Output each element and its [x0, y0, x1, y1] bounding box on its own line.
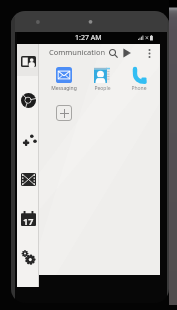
staticText: 1:27 AM [75, 33, 102, 43]
button[interactable]: Messaging [47, 67, 81, 92]
button[interactable]: Communication [17, 45, 39, 77]
button[interactable]: Play [120, 46, 134, 60]
button[interactable]: Calendar [17, 202, 39, 234]
button[interactable]: Games [17, 124, 39, 156]
staticText: Messaging [51, 85, 77, 92]
staticText: People [94, 85, 111, 92]
button[interactable]: Add [56, 105, 72, 121]
button[interactable]: Movies [17, 163, 39, 195]
staticText: 17 [23, 215, 34, 227]
button[interactable]: Phone [122, 67, 156, 92]
button[interactable]: People [85, 67, 119, 92]
staticText: Communication [49, 47, 106, 57]
button[interactable]: Settings [17, 241, 39, 273]
button[interactable]: More options [142, 46, 156, 60]
button[interactable]: Chrome [17, 84, 39, 116]
staticText: Phone [131, 85, 147, 92]
button[interactable]: Search [106, 46, 120, 60]
